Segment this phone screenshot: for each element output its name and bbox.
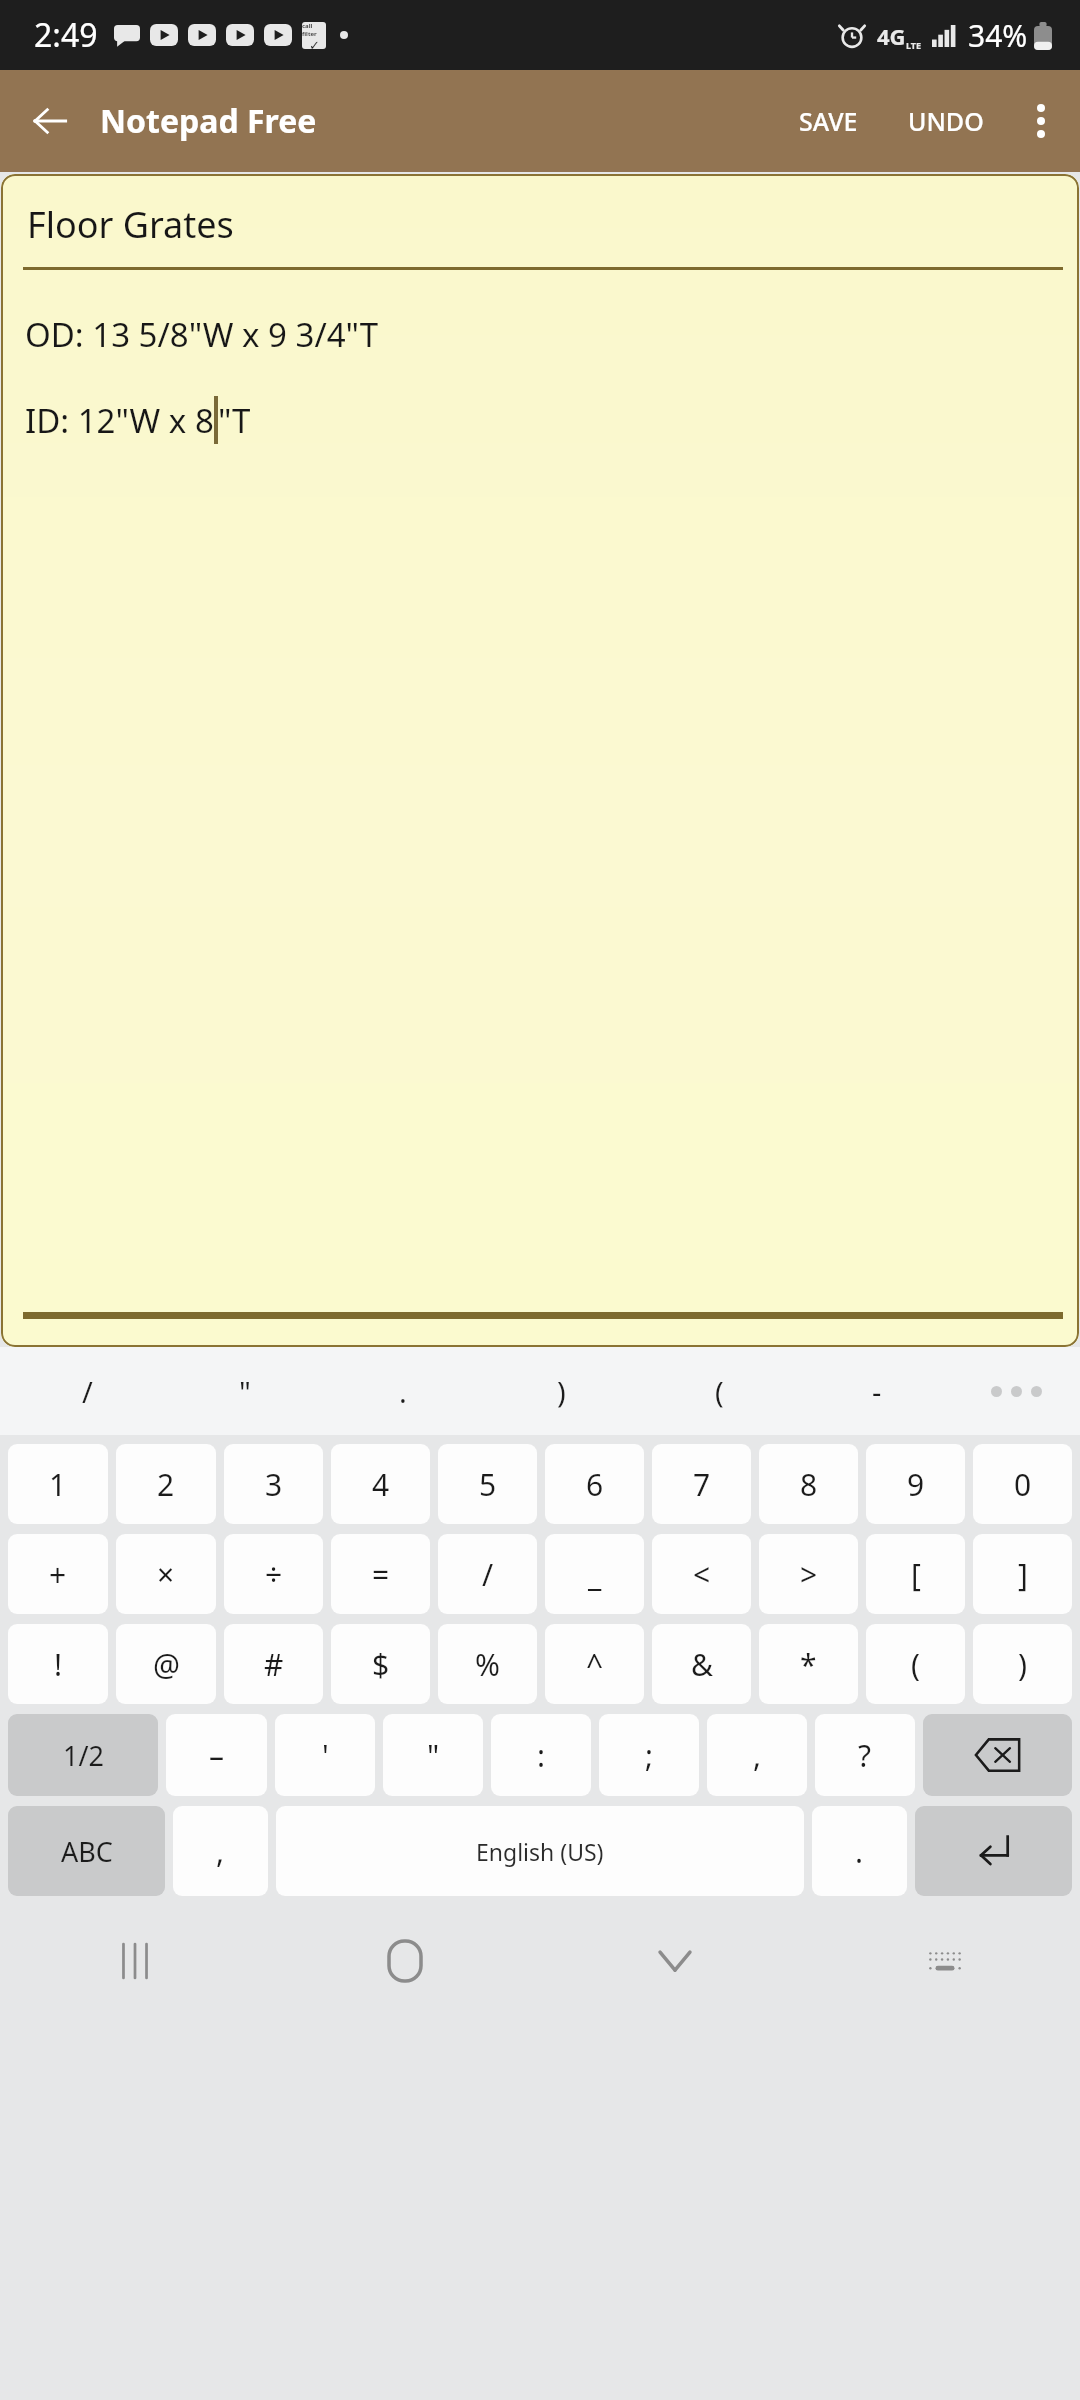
button[interactable]: Floor Grates [1,174,1079,1347]
staticText: 6 [586,1464,604,1505]
button[interactable]: / [8,1347,166,1435]
staticText: - [872,1372,882,1411]
button[interactable]: ] [973,1534,1072,1614]
staticText: ) [557,1372,566,1411]
button[interactable]: ^ [545,1624,644,1704]
staticText: + [49,1554,67,1595]
button[interactable]: Back [0,70,100,172]
button[interactable]: × [116,1534,216,1614]
staticText: SAVE [799,104,858,138]
button[interactable]: ; [599,1714,699,1796]
staticText: ÷ [265,1554,283,1595]
staticText: "T [218,398,251,443]
button[interactable]: & [652,1624,751,1704]
button[interactable]: + [8,1534,108,1614]
staticText: × [157,1554,175,1595]
button[interactable]: 0 [973,1444,1072,1524]
button[interactable]: = [331,1534,430,1614]
button[interactable]: * [759,1624,858,1704]
button[interactable]: . [324,1347,482,1435]
button[interactable]: 1 [8,1444,108,1524]
staticText: – [209,1735,224,1776]
button[interactable]: 6 [545,1444,644,1524]
staticText: UNDO [908,104,984,138]
button[interactable]: Enter [915,1806,1072,1896]
staticText: . [855,1831,864,1872]
staticText: . [399,1372,407,1411]
button[interactable]: [ [866,1534,965,1614]
staticText: 9 [907,1464,925,1505]
button[interactable]: More suggestions [956,1347,1076,1435]
staticText: & [691,1644,713,1685]
staticText: [ [911,1554,921,1595]
staticText: ( [911,1644,920,1685]
staticText: 2 [157,1464,175,1505]
button[interactable]: More options [1002,70,1080,172]
button[interactable]: - [798,1347,956,1435]
button[interactable]: @ [116,1624,216,1704]
staticText: 8 [800,1464,818,1505]
button[interactable]: 1/2 [8,1714,158,1796]
staticText: 0 [1014,1464,1032,1505]
button[interactable]: . [812,1806,907,1896]
button[interactable]: ) [973,1624,1072,1704]
button[interactable]: Backspace [923,1714,1072,1796]
staticText: , [216,1831,225,1872]
button[interactable]: 8 [759,1444,858,1524]
button[interactable]: Home [270,1907,540,2015]
button[interactable]: ! [8,1624,108,1704]
button[interactable]: ? [815,1714,915,1796]
button[interactable]: , [173,1806,268,1896]
button[interactable]: Recent apps [0,1907,270,2015]
button[interactable]: ABC [8,1806,165,1896]
button[interactable]: < [652,1534,751,1614]
button[interactable]: ( [640,1347,798,1435]
button[interactable]: % [438,1624,537,1704]
staticText: English (US) [476,1836,604,1867]
button[interactable]: : [491,1714,591,1796]
staticText: 1 [49,1464,67,1505]
button[interactable]: > [759,1534,858,1614]
button[interactable]: UNDO [890,70,1002,172]
staticText: ID: 12"W x 8 [25,398,214,443]
button[interactable]: _ [545,1534,644,1614]
button[interactable]: SAVE [781,70,876,172]
button[interactable]: – [166,1714,267,1796]
button[interactable]: ( [866,1624,965,1704]
staticText: % [475,1644,500,1685]
button[interactable]: " [166,1347,324,1435]
button[interactable]: English (US) [276,1806,804,1896]
staticText: Floor Grates [27,200,234,249]
button[interactable]: 5 [438,1444,537,1524]
button[interactable]: / [438,1534,537,1614]
staticText: " [427,1735,440,1776]
staticText: ) [1018,1644,1027,1685]
button[interactable]: , [707,1714,807,1796]
staticText: " [239,1372,251,1411]
button[interactable]: " [383,1714,483,1796]
staticText: ✓ [309,38,320,49]
staticText: , [753,1735,762,1776]
staticText: 34% [968,15,1028,56]
staticText: ; [645,1735,654,1776]
staticText: 5 [479,1464,497,1505]
button[interactable]: 4 [331,1444,430,1524]
staticText: ( [715,1372,724,1411]
button[interactable]: 2 [116,1444,216,1524]
button[interactable]: # [224,1624,323,1704]
button[interactable]: 9 [866,1444,965,1524]
staticText: @ [153,1644,180,1685]
button[interactable]: ÷ [224,1534,323,1614]
staticText: ? [858,1735,872,1776]
button[interactable]: Hide keyboard [540,1907,810,2015]
button[interactable]: $ [331,1624,430,1704]
button[interactable]: 3 [224,1444,323,1524]
button[interactable]: Change keyboard [810,1907,1080,2015]
button[interactable]: ' [275,1714,375,1796]
staticText: 4 [372,1464,390,1505]
staticText: call filter [302,22,326,38]
button[interactable]: ) [482,1347,640,1435]
button[interactable]: 7 [652,1444,751,1524]
staticText: < [693,1554,711,1595]
staticText: ] [1018,1554,1028,1595]
